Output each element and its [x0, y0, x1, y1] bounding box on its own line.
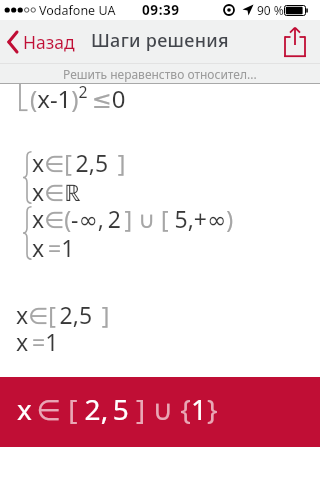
button[interactable]: x ∈ [ 2, 5 ] ∪ {1} — [0, 377, 320, 447]
staticText: x∈[ 2,5 ] — [32, 147, 126, 178]
staticText: x ∈ [ 2, 5 ] ∪ {1} — [17, 390, 218, 428]
staticText: Vodafone UA — [39, 2, 116, 19]
staticText: x∈[ 2,5 ] — [16, 299, 110, 330]
staticText: x =1 — [16, 326, 59, 357]
staticText: (x-1)2 ≤0 — [30, 81, 126, 115]
staticText: 90 % — [257, 2, 284, 18]
staticText: Решить неравенство относител... — [63, 66, 257, 82]
staticText: 09:39 — [142, 1, 180, 19]
button[interactable]: Назад — [0, 22, 75, 62]
staticText: x =1 — [32, 232, 75, 263]
staticText: x∈(-∞, 2 ] ∪ [ 5,+∞) — [32, 203, 234, 234]
staticText: Назад — [23, 30, 75, 54]
staticText: Шаги решения — [91, 28, 229, 53]
button[interactable] — [278, 22, 312, 62]
staticText: x∈ℝ — [32, 176, 81, 207]
